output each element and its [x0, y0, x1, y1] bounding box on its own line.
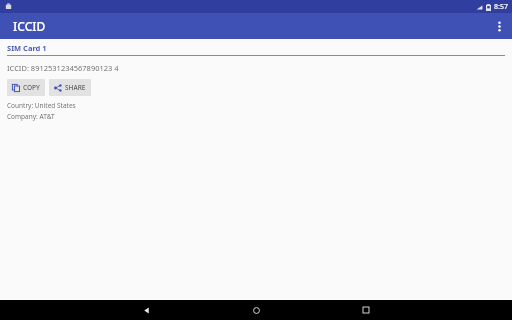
- staticText: ICCID: 8912531234567890123 4: [7, 63, 119, 73]
- staticText: SHARE: [65, 83, 86, 92]
- staticText: ICCID: [13, 18, 46, 34]
- staticText: 8:57: [494, 2, 508, 12]
- button[interactable]: Recent apps: [346, 300, 386, 320]
- staticText: SIM Card 1: [7, 43, 47, 53]
- button[interactable]: More options: [486, 13, 512, 39]
- button[interactable]: COPY: [7, 79, 45, 96]
- staticText: Country: United States: [7, 101, 76, 110]
- staticText: COPY: [23, 83, 40, 92]
- button[interactable]: SHARE: [49, 79, 91, 96]
- button[interactable]: Back: [126, 300, 166, 320]
- staticText: Company: AT&T: [7, 112, 55, 121]
- button[interactable]: Home: [236, 300, 276, 320]
